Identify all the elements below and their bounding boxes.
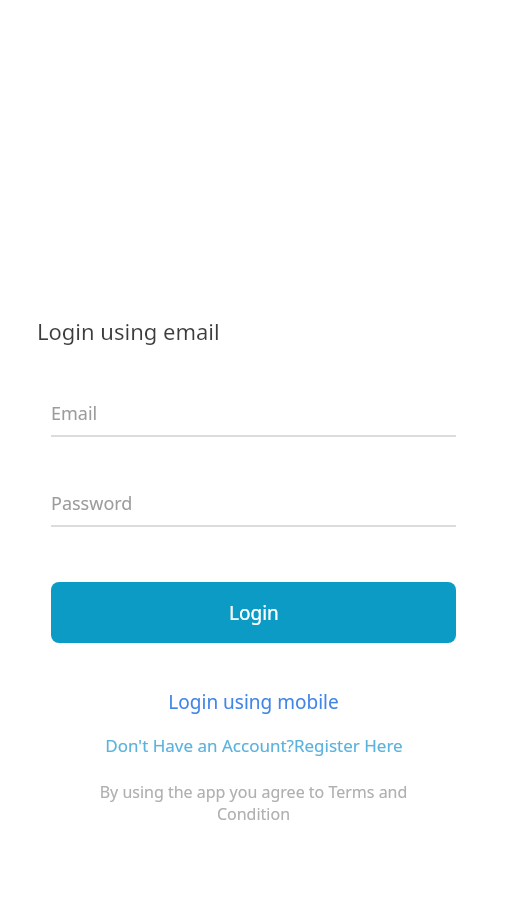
button[interactable]: Login bbox=[51, 582, 456, 643]
staticText: Password bbox=[51, 491, 133, 516]
staticText: By using the app you agree to Terms and … bbox=[72, 781, 435, 825]
button[interactable]: By using the app you agree to Terms and … bbox=[72, 781, 435, 825]
button[interactable]: Don't Have an Account?Register Here bbox=[0, 732, 507, 758]
staticText: Login using email bbox=[37, 316, 220, 346]
staticText: Login bbox=[229, 600, 279, 626]
button[interactable]: Login using mobile bbox=[0, 687, 507, 717]
staticText: Login using mobile bbox=[168, 689, 339, 715]
button[interactable]: Password bbox=[51, 491, 456, 527]
staticText: Don't Have an Account?Register Here bbox=[105, 734, 403, 757]
button[interactable]: Email bbox=[51, 401, 456, 437]
staticText: Email bbox=[51, 401, 98, 426]
